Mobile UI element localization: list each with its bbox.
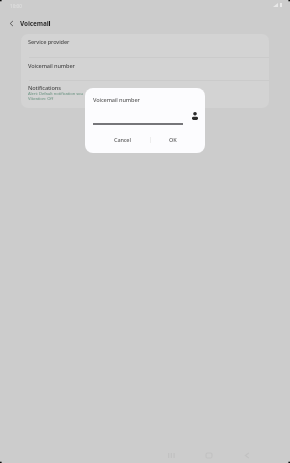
staticText: Alert: Default notification sou <box>28 91 84 97</box>
staticText: Service provider <box>28 38 70 46</box>
staticText: Voicemail <box>20 19 51 28</box>
staticText: Cancel <box>114 136 131 143</box>
staticText: Voicemail number <box>93 96 140 104</box>
staticText: Vibration: Off <box>28 96 54 102</box>
button[interactable]: Cancel <box>85 132 150 153</box>
staticText: Notifications <box>28 84 61 92</box>
staticText: 10:00 <box>10 3 22 9</box>
button[interactable]: Service provider <box>21 34 269 58</box>
staticText: Voicemail number <box>28 62 75 70</box>
button[interactable]: Pick contact <box>189 110 201 122</box>
button[interactable]: Navigate up <box>2 14 20 32</box>
button[interactable]: Voicemail number <box>21 58 269 80</box>
staticText: OK <box>169 136 177 143</box>
button[interactable]: Notifications <box>21 81 269 108</box>
button[interactable]: OK <box>150 132 205 153</box>
